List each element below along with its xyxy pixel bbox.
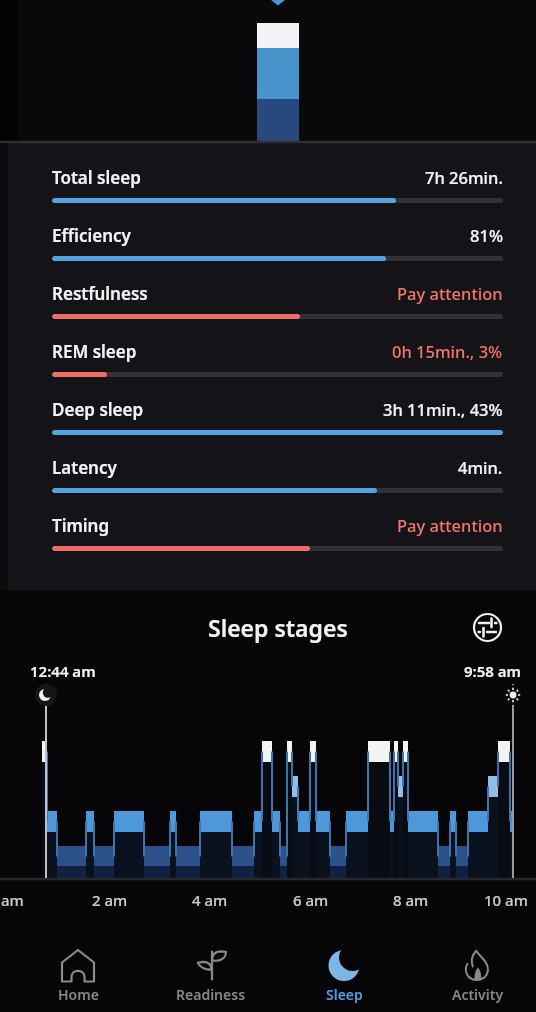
staticText: Deep sleep — [52, 398, 144, 421]
button[interactable] — [470, 610, 505, 645]
staticText: 9:58 am — [464, 661, 521, 681]
staticText: 8 am — [393, 890, 429, 910]
staticText: Home — [58, 985, 99, 1004]
staticText: Total sleep — [52, 166, 141, 189]
staticText: Pay attention — [397, 282, 503, 304]
button[interactable]: Home — [23, 938, 133, 1012]
staticText: 4 am — [192, 890, 228, 910]
staticText: 0h 15min., 3% — [392, 340, 503, 362]
staticText: Latency — [52, 456, 117, 479]
staticText: 81% — [470, 224, 503, 246]
staticText: Sleep — [326, 985, 363, 1004]
staticText: 4min. — [458, 456, 503, 478]
button[interactable]: Deep sleep — [52, 396, 503, 422]
button[interactable]: Timing — [52, 512, 503, 538]
staticText: Pay attention — [397, 514, 503, 536]
staticText: 7h 26min. — [425, 166, 503, 188]
button[interactable]: Sleep — [289, 938, 399, 1012]
staticText: 10 am — [484, 890, 528, 910]
button[interactable]: REM sleep — [52, 338, 503, 364]
button[interactable]: Efficiency — [52, 222, 503, 248]
staticText: 12:44 am — [30, 661, 96, 681]
button[interactable]: Activity — [423, 938, 533, 1012]
staticText: Activity — [452, 985, 504, 1004]
button[interactable]: Total sleep — [52, 164, 503, 190]
button[interactable]: Restfulness — [52, 280, 503, 306]
staticText: 6 am — [293, 890, 329, 910]
staticText: Efficiency — [52, 224, 131, 247]
staticText: Readiness — [176, 985, 246, 1004]
staticText: Sleep stages — [208, 612, 348, 643]
button[interactable]: Readiness — [156, 938, 266, 1012]
staticText: Restfulness — [52, 282, 148, 305]
staticText: 3h 11min., 43% — [383, 398, 503, 420]
staticText: 2 am — [92, 890, 128, 910]
staticText: am — [1, 890, 24, 910]
staticText: Timing — [52, 514, 110, 537]
staticText: REM sleep — [52, 340, 137, 363]
button[interactable]: Latency — [52, 454, 503, 480]
